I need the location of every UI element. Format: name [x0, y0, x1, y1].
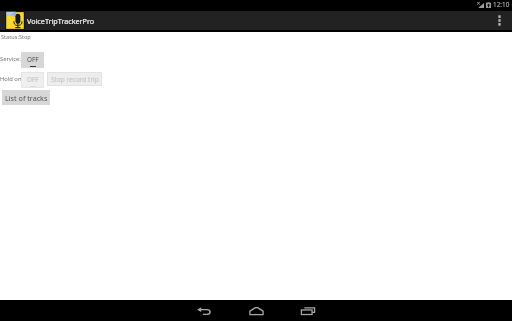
staticText: OFF — [27, 55, 39, 64]
button[interactable]: VoiceTripTrackerPro — [5, 11, 93, 30]
staticText: Stop record trip — [51, 75, 99, 84]
button[interactable]: OFF — [21, 52, 44, 68]
button[interactable]: Home — [236, 300, 276, 321]
button[interactable]: OFF — [21, 72, 44, 88]
button[interactable]: List of tracks — [2, 90, 50, 105]
staticText: OFF — [27, 75, 39, 84]
button[interactable]: Recent apps — [288, 300, 328, 321]
staticText: Hold on — [0, 75, 22, 83]
button[interactable]: Stop record trip — [47, 72, 102, 86]
button[interactable]: More options — [490, 11, 508, 30]
staticText: VoiceTripTrackerPro — [27, 16, 95, 26]
staticText: 12:10 — [493, 0, 510, 9]
staticText: Status:Stop — [1, 33, 31, 41]
staticText: List of tracks — [5, 93, 48, 103]
staticText: Service: — [0, 55, 21, 63]
button[interactable]: Back — [184, 300, 224, 321]
